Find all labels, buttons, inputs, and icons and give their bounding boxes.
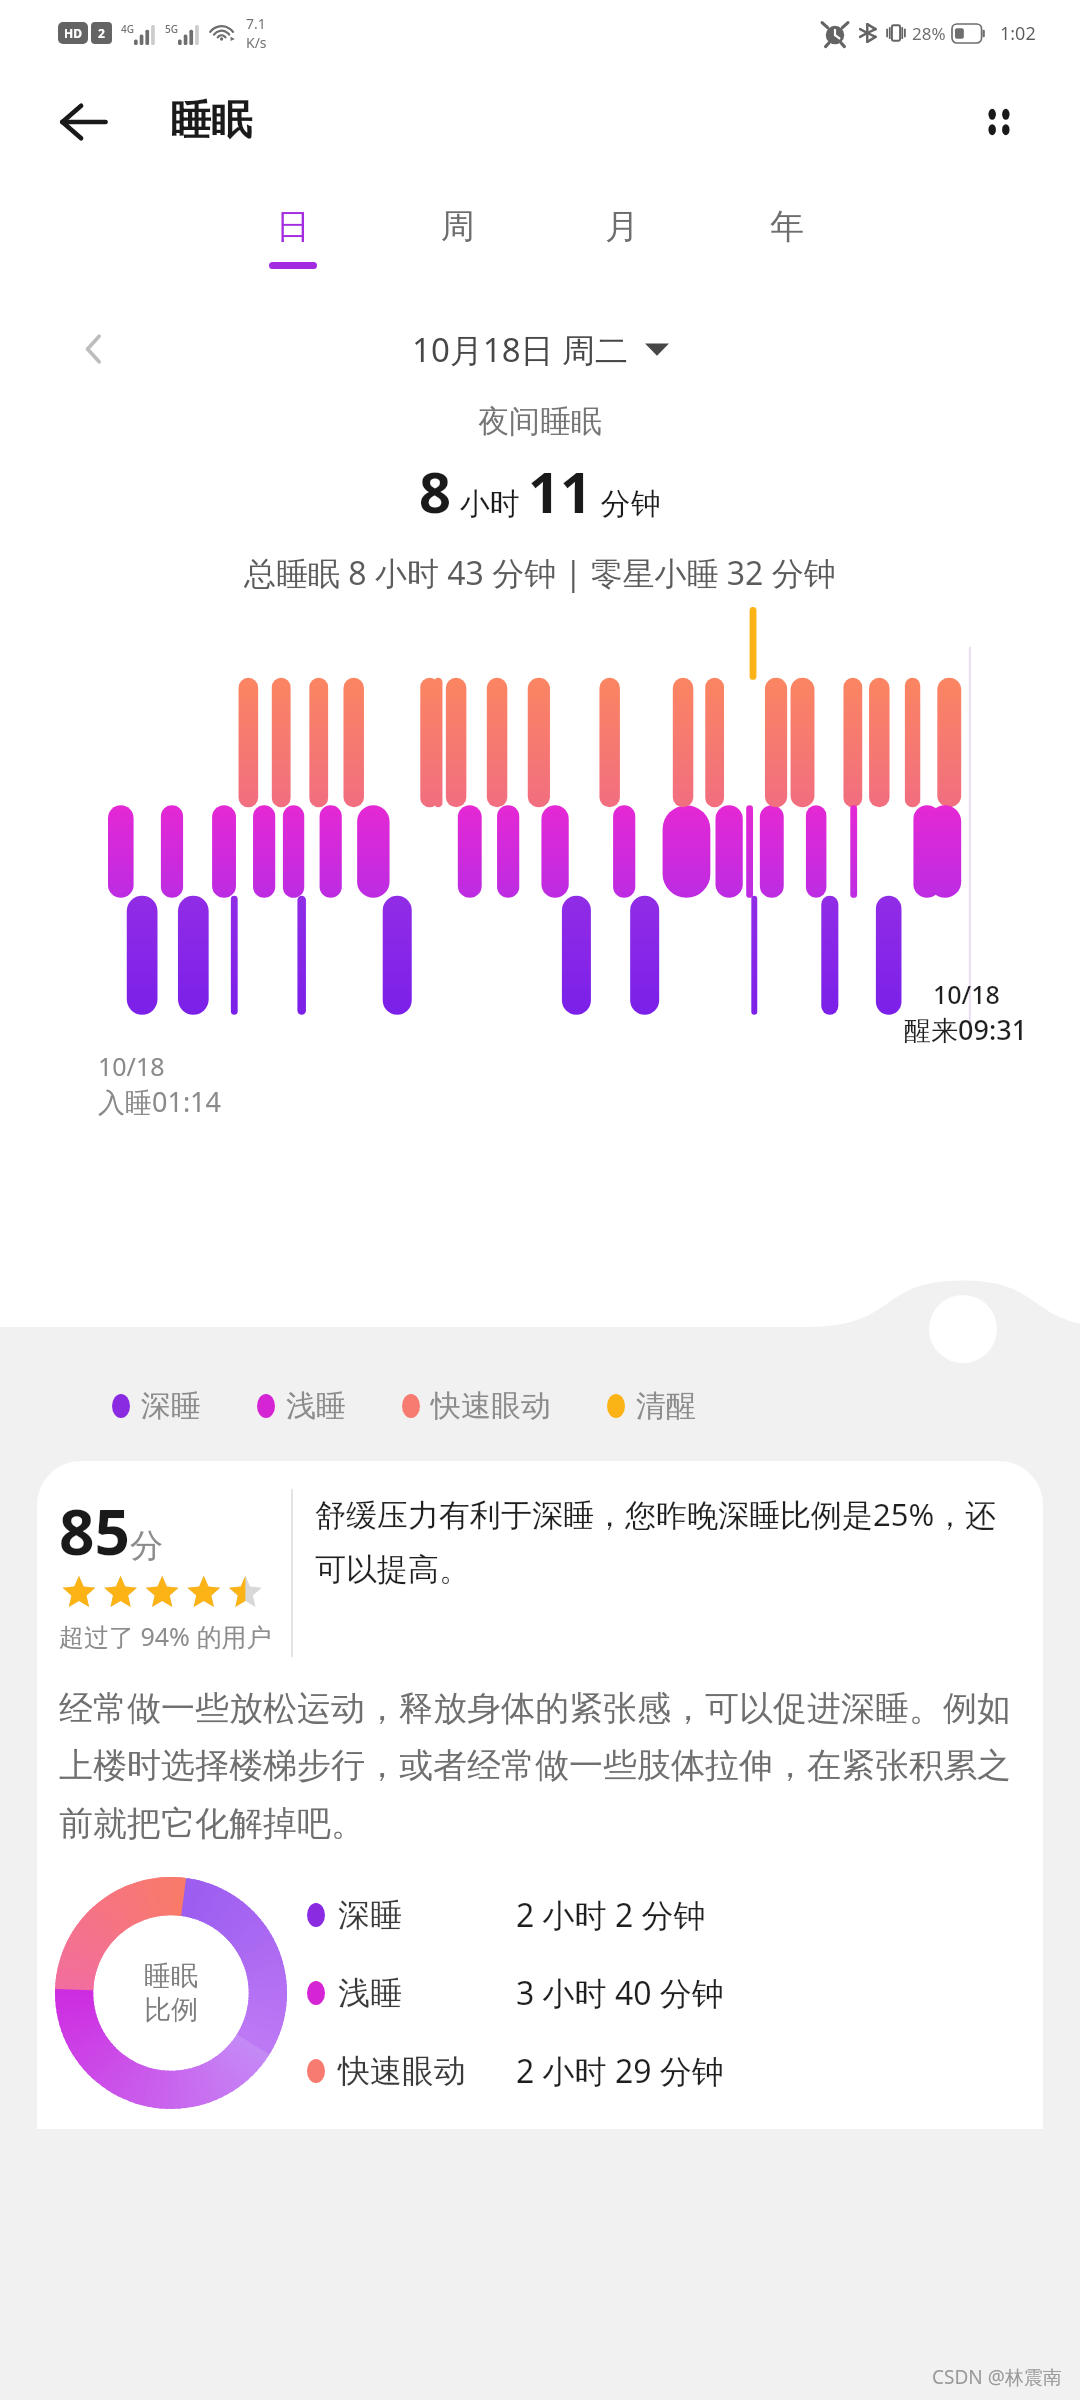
button[interactable]: 日 (250, 205, 336, 269)
staticText: 睡眠 (144, 1959, 198, 1993)
staticText: 经常做一些放松运动，释放身体的紧张感，可以促进深睡。例如上楼时选择楼梯步行，或者… (59, 1687, 1021, 1845)
staticText: 睡眠 (170, 95, 252, 147)
staticText: 8 (419, 453, 452, 529)
staticText: 11 (528, 453, 593, 529)
button[interactable]: 周 (415, 205, 501, 269)
button[interactable]: Add sleep record (929, 1295, 997, 1363)
staticText: 醒来09:31 (904, 1011, 1028, 1048)
staticText: 分 (130, 1525, 163, 1567)
staticText: 1:02 (1000, 21, 1036, 46)
staticText: 85 (59, 1489, 130, 1573)
button[interactable]: 深睡 (307, 1893, 1035, 1937)
staticText: 浅睡 (286, 1387, 346, 1425)
staticText: 4G (121, 22, 134, 36)
staticText: 夜间睡眠 (478, 402, 602, 441)
staticText: 2 小时 29 分钟 (516, 2049, 1035, 2093)
staticText: 快速眼动 (431, 1387, 551, 1425)
button[interactable]: 快速眼动 (402, 1387, 551, 1425)
staticText: 3 小时 40 分钟 (516, 1971, 1035, 2015)
staticText: 深睡 (141, 1387, 201, 1425)
staticText: 超过了 94% 的用户 (59, 1619, 272, 1653)
staticText: CSDN @林震南 (932, 2364, 1062, 2390)
staticText: 浅睡 (338, 1973, 510, 2013)
staticText: 5G (165, 22, 178, 36)
staticText: 月 (605, 205, 639, 248)
staticText: 入睡01:14 (98, 1083, 222, 1120)
button[interactable]: 快速眼动 (307, 2049, 1035, 2093)
button[interactable]: 浅睡 (307, 1971, 1035, 2015)
staticText: 2 小时 2 分钟 (516, 1893, 1035, 1937)
staticText: 7.1 (246, 14, 266, 33)
staticText: 10/18 (98, 1049, 165, 1083)
button[interactable]: 深睡 (112, 1387, 201, 1425)
staticText: 周 (441, 205, 475, 248)
staticText: 28% (912, 22, 946, 45)
button[interactable]: 清醒 (607, 1387, 696, 1425)
staticText: HD (64, 25, 82, 41)
staticText: 小时 (452, 482, 528, 523)
staticText: 深睡 (338, 1895, 510, 1935)
button[interactable]: 月 (579, 205, 665, 269)
staticText: 日 (276, 205, 310, 248)
staticText: 2 (98, 25, 105, 41)
staticText: 10月18日 周二 (412, 327, 629, 372)
staticText: K/s (246, 33, 267, 52)
button[interactable]: Back (46, 84, 122, 160)
staticText: 分钟 (593, 482, 661, 523)
staticText: 舒缓压力有利于深睡，您昨晚深睡比例是25%，还可以提高。 (315, 1493, 1021, 1590)
button[interactable]: 10月18日 周二 (402, 321, 679, 378)
staticText: 10/18 (933, 977, 1000, 1011)
staticText: 比例 (144, 1993, 198, 2027)
button[interactable]: Previous day (64, 319, 124, 379)
button[interactable]: More options (958, 81, 1040, 163)
button[interactable]: 年 (744, 205, 830, 269)
staticText: 总睡眠 8 小时 43 分钟 | 零星小睡 32 分钟 (244, 551, 836, 595)
staticText: 清醒 (636, 1387, 696, 1425)
staticText: 快速眼动 (338, 2051, 510, 2091)
staticText: 年 (770, 205, 804, 248)
button[interactable]: 浅睡 (257, 1387, 346, 1425)
